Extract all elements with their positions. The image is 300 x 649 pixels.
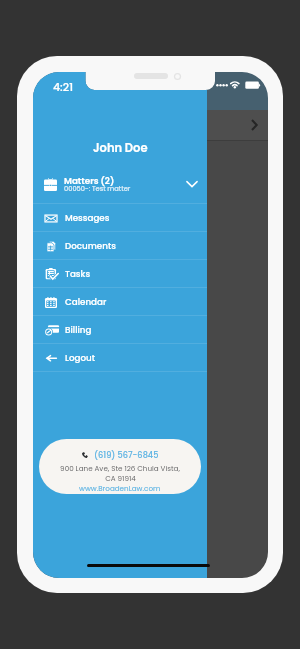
- staticText: 900 Lane Ave, Ste 126 Chula Vista,: [60, 463, 180, 473]
- staticText: 4:21: [53, 79, 74, 94]
- button[interactable]: Documents: [33, 232, 207, 259]
- staticText: Documents: [65, 240, 116, 252]
- button[interactable]: (619) 567-6845: [39, 439, 201, 494]
- staticText: www.BroadenLaw.com: [79, 483, 161, 493]
- staticText: CA 91914: [105, 473, 136, 483]
- staticText: (619) 567-6845: [94, 449, 159, 460]
- button[interactable]: Logout: [33, 344, 207, 371]
- staticText: Billing: [65, 324, 92, 336]
- staticText: John Doe: [93, 140, 148, 156]
- button[interactable]: Tasks: [33, 260, 207, 287]
- button[interactable]: Billing: [33, 316, 207, 343]
- staticText: Logout: [65, 352, 95, 364]
- button[interactable]: Calendar: [33, 288, 207, 315]
- button[interactable]: Messages: [33, 204, 207, 231]
- staticText: Tasks: [65, 268, 91, 280]
- staticText: Matters (2): [64, 175, 115, 187]
- staticText: 00050-: Test matter: [64, 184, 131, 193]
- button[interactable]: Matters (2): [33, 165, 207, 203]
- staticText: Messages: [65, 212, 110, 224]
- staticText: Calendar: [65, 296, 107, 308]
